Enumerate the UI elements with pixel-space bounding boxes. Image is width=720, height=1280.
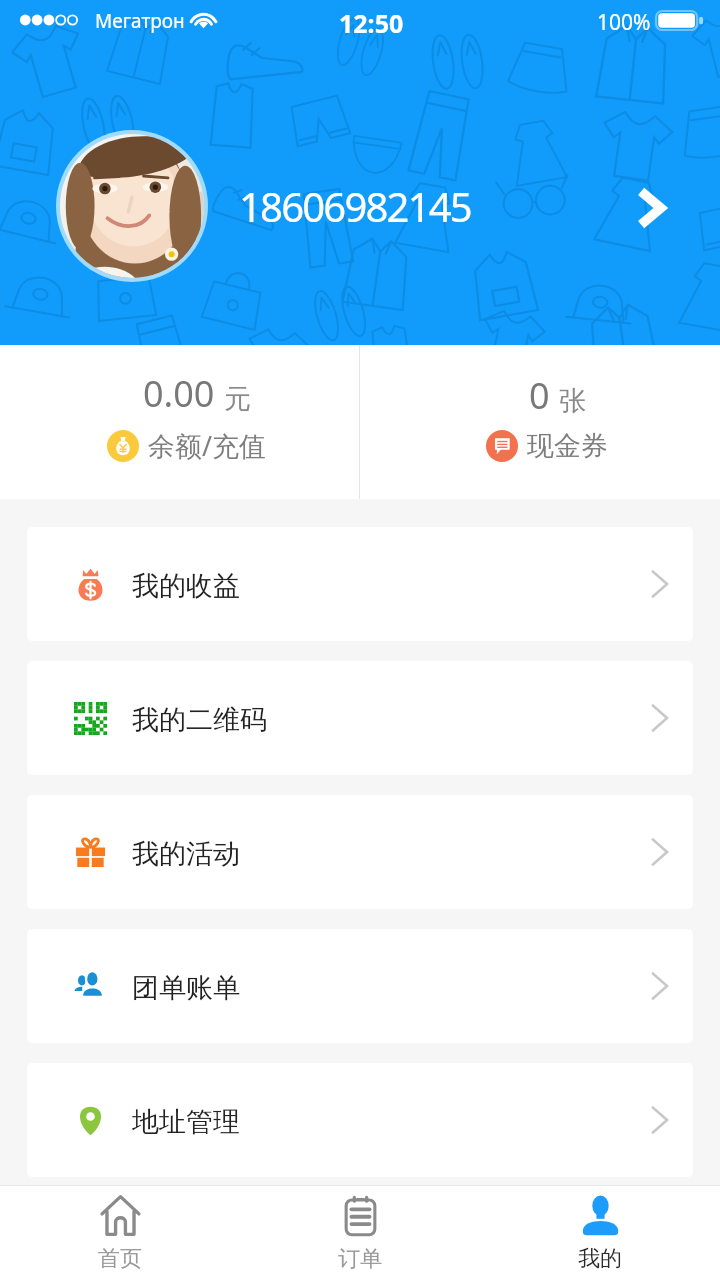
staticText: 我的收益 bbox=[132, 569, 240, 603]
staticText: 我的 bbox=[578, 1245, 622, 1273]
staticText: 我的二维码 bbox=[132, 703, 267, 737]
button[interactable]: 我的 bbox=[480, 1186, 720, 1280]
staticText: 12:50 bbox=[339, 6, 404, 40]
staticText: 18606982145 bbox=[239, 179, 471, 233]
staticText: 地址管理 bbox=[132, 1105, 240, 1139]
staticText: 现金券 bbox=[527, 429, 608, 463]
staticText: 团单账单 bbox=[132, 971, 240, 1005]
button[interactable]: 我的收益 bbox=[27, 527, 693, 641]
staticText: 元 bbox=[224, 382, 251, 416]
button[interactable]: 订单 bbox=[240, 1186, 480, 1280]
staticText: 余额/充值 bbox=[148, 427, 267, 464]
button[interactable]: 我的活动 bbox=[27, 795, 693, 909]
button[interactable]: 团单账单 bbox=[27, 929, 693, 1043]
staticText: 0 bbox=[529, 371, 550, 420]
button[interactable]: 地址管理 bbox=[27, 1063, 693, 1177]
staticText: 我的活动 bbox=[132, 837, 240, 871]
staticText: 0.00 bbox=[143, 369, 215, 418]
button[interactable]: 我的二维码 bbox=[27, 661, 693, 775]
button[interactable]: 18606982145 bbox=[0, 42, 720, 345]
staticText: 首页 bbox=[98, 1245, 142, 1273]
button[interactable]: 首页 bbox=[0, 1186, 240, 1280]
staticText: 张 bbox=[559, 384, 586, 418]
staticText: 100% bbox=[597, 8, 651, 37]
button[interactable]: 0 bbox=[360, 345, 720, 499]
other: Profile details bbox=[636, 186, 666, 230]
button[interactable]: 0.00 bbox=[0, 345, 359, 499]
staticText: 订单 bbox=[338, 1245, 382, 1273]
staticText: Мегатрон bbox=[95, 8, 185, 34]
